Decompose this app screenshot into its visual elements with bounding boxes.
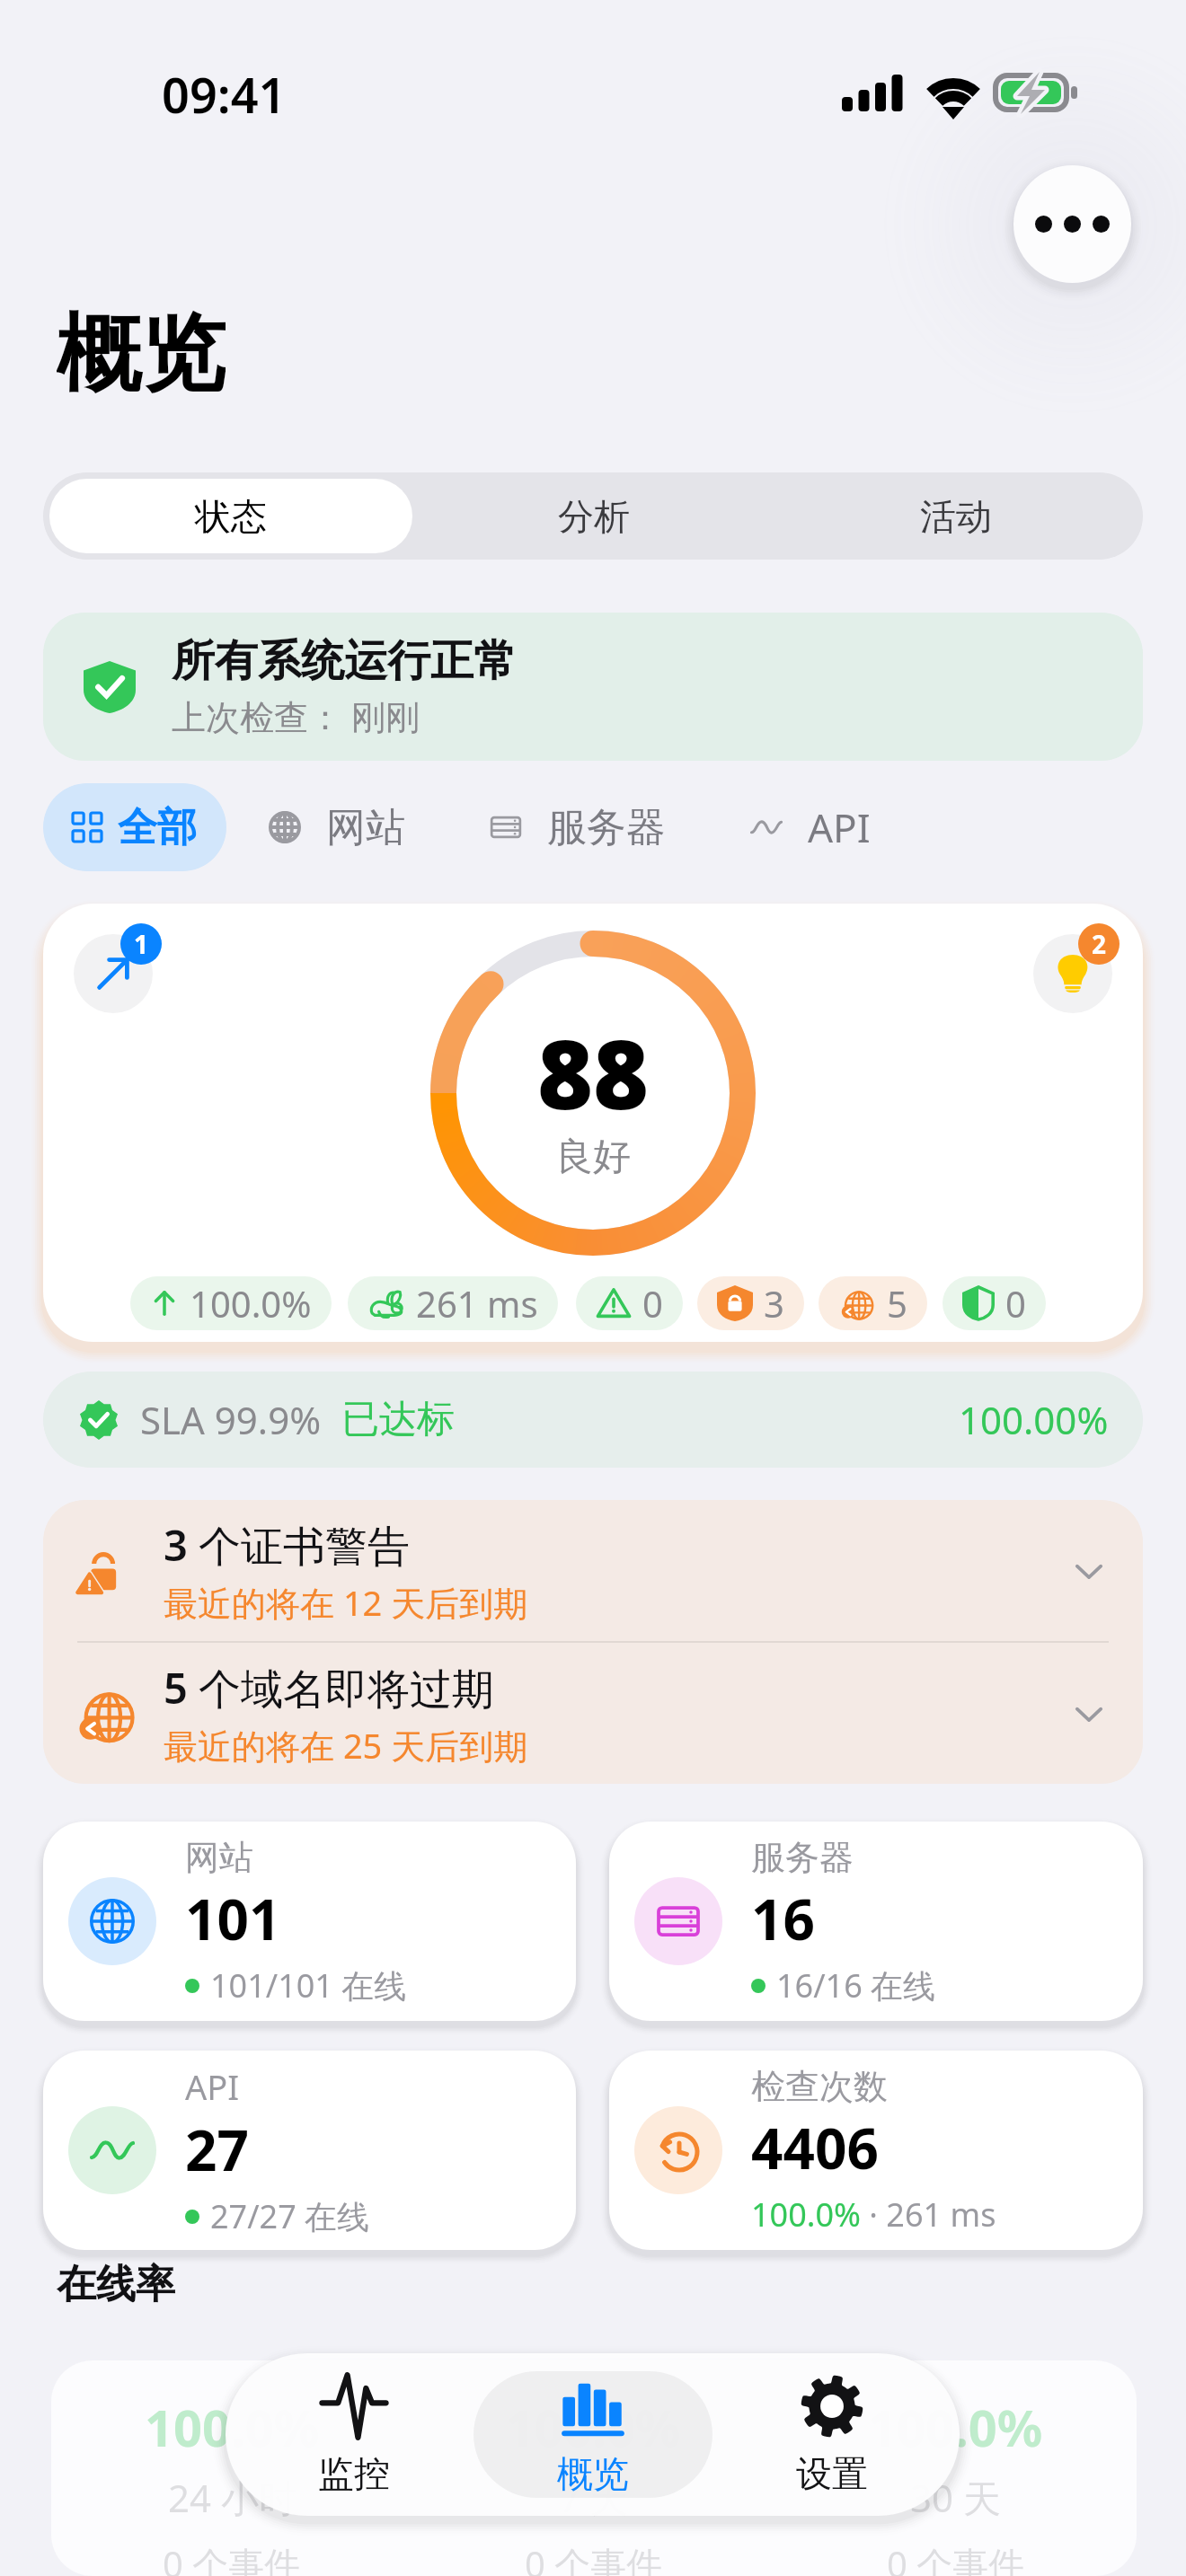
staticText: 已达标 [341,1396,455,1443]
staticText: 最近的将在 12 天后到期 [164,1579,528,1626]
button[interactable]: 0 [576,1276,683,1330]
staticText: 3 个证书警告 [164,1516,411,1574]
staticText: 0 个事件 [887,2539,1025,2576]
staticText: 16/16 在线 [776,1963,936,2007]
staticText: 全部 [118,803,197,852]
staticText: 网站 [185,1836,253,1879]
staticText: 概览 [557,2451,629,2496]
staticText: 1 [134,927,149,961]
staticText: API [808,800,871,854]
button[interactable]: 分析 [412,479,774,553]
button[interactable]: Trends [74,934,153,1013]
staticText: 09:41 [162,61,287,128]
staticText: 7 天 [559,2472,628,2523]
staticText: 概览 [57,301,226,400]
staticText: SLA 99.9% [140,1394,322,1445]
staticText: 101/101 在线 [210,1963,407,2007]
staticText: 100.00% [959,1394,1109,1445]
staticText: 0 [642,1279,663,1328]
staticText: 监控 [318,2451,390,2496]
button[interactable]: 概览 [474,2371,712,2498]
staticText: 所有系统运行正常 [172,634,517,688]
staticText: 分析 [558,494,630,539]
button[interactable]: SLA 99.9% [43,1372,1143,1468]
button[interactable]: 3 个证书警告 [43,1500,1143,1641]
button[interactable]: 状态 [49,479,412,553]
staticText: 27 [185,2112,249,2187]
button[interactable]: 检查次数 [609,2051,1143,2250]
staticText: 2 [1092,927,1107,961]
staticText: 服务器 [751,1836,854,1879]
staticText: 261 ms [416,1279,538,1328]
button[interactable]: 5 个域名即将过期 [43,1643,1143,1784]
button[interactable]: 全部 [43,783,226,871]
button[interactable]: 监控 [234,2371,474,2498]
staticText: 3 [764,1279,784,1328]
button[interactable]: 网站 [226,783,447,871]
button[interactable]: 3 [697,1276,804,1330]
staticText: 0 个事件 [525,2539,663,2576]
staticText: 16 [751,1881,815,1956]
staticText: 0 个事件 [163,2539,301,2576]
staticText: · 261 ms [861,2192,996,2236]
button[interactable]: 100.0% [130,1276,332,1330]
staticText: 4406 [751,2110,879,2185]
button[interactable]: 设置 [712,2371,951,2498]
staticText: 100.0% [190,1279,312,1328]
staticText: API [185,2063,240,2110]
staticText: 上次检查： 刚刚 [172,693,420,739]
staticText: 100.0% [868,2393,1043,2461]
staticText: 活动 [920,494,992,539]
button[interactable]: 0 [943,1276,1046,1330]
staticText: 100.0% [506,2393,681,2461]
button[interactable]: 所有系统运行正常 [43,613,1143,761]
staticText: 状态 [195,494,267,539]
staticText: 100.0% [751,2192,861,2236]
staticText: 101 [185,1881,281,1956]
button[interactable]: 服务器 [447,783,708,871]
staticText: 30 天 [910,2472,1001,2523]
button[interactable]: 服务器 [609,1822,1143,2021]
staticText: 设置 [796,2451,868,2496]
staticText: 检查次数 [751,2065,888,2108]
staticText: 100.0% [145,2393,320,2461]
staticText: 24 小时 [168,2472,296,2523]
button[interactable]: Tips [1033,934,1112,1013]
button[interactable]: 活动 [774,479,1137,553]
staticText: 在线率 [57,2260,175,2309]
button[interactable]: API [708,783,913,871]
button[interactable]: More options [1013,165,1131,283]
staticText: 服务器 [547,803,666,852]
staticText: 5 [887,1279,907,1328]
staticText: 0 [1005,1279,1026,1328]
staticText: 最近的将在 25 天后到期 [164,1722,528,1769]
staticText: 网站 [326,803,405,852]
button[interactable]: 261 ms [348,1276,558,1330]
button[interactable]: API [43,2051,576,2250]
button[interactable]: 5 [819,1276,927,1330]
staticText: 良好 [555,1134,631,1181]
staticText: 88 [537,1008,650,1137]
staticText: 27/27 在线 [210,2194,370,2238]
staticText: 5 个域名即将过期 [164,1659,495,1716]
button[interactable]: 网站 [43,1822,576,2021]
